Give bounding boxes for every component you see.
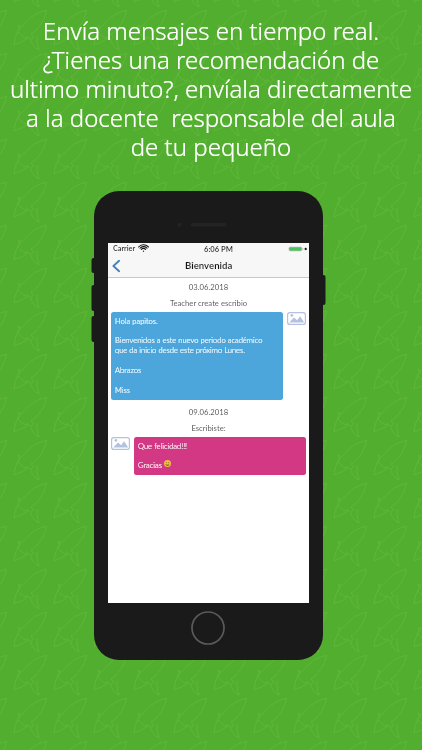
staticText: Que felicidad!!! Gracias	[138, 441, 188, 470]
staticText: 03.06.2018	[108, 282, 309, 291]
staticText: 6:06 PM	[204, 244, 233, 253]
button[interactable]: Hola papitos. Bienvenidos a este nuevo p…	[111, 312, 283, 400]
staticText: Carrier	[113, 244, 136, 253]
staticText: Bienvenida	[185, 260, 233, 272]
staticText: Escribiste:	[108, 423, 309, 432]
button[interactable]: Que felicidad!!! Gracias	[134, 437, 306, 475]
staticText: Envía mensajes en tiempo real. ¿Tienes u…	[0, 14, 422, 163]
staticText: Hola papitos. Bienvenidos a este nuevo p…	[115, 316, 263, 395]
staticText: Teacher create escribio	[108, 298, 309, 307]
button[interactable]: Back	[108, 254, 126, 278]
staticText: 09.06.2018	[108, 407, 309, 416]
